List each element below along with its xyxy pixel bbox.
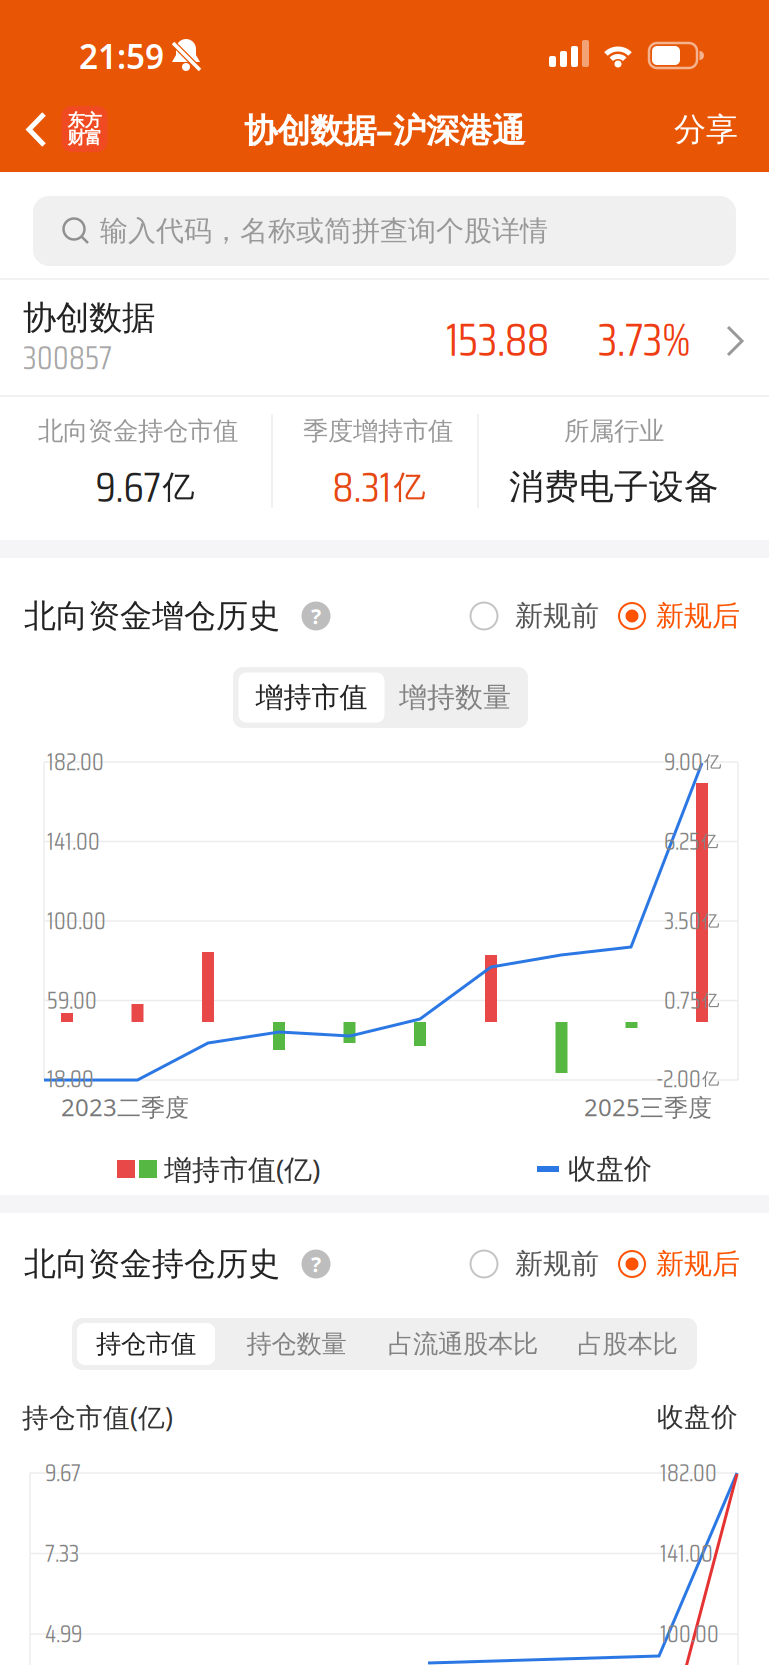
staticText: 141.00 [660, 1535, 713, 1572]
button[interactable]: 增持数量 [399, 672, 511, 722]
staticText: 300857 [23, 333, 112, 383]
staticText: 182.00 [47, 743, 104, 781]
staticText: 182.00 [660, 1454, 717, 1492]
staticText: 收盘价 [657, 1401, 738, 1433]
staticText: 亿 [702, 1068, 719, 1090]
staticText: 59.00 [47, 982, 97, 1019]
staticText: 新规后 [656, 599, 740, 633]
staticText: 增持市值 [255, 680, 367, 715]
staticText: 协创数据 [23, 297, 155, 338]
staticText: 持仓市值 [96, 1328, 196, 1359]
staticText: 新规前 [515, 599, 599, 633]
staticText: 亿 [702, 910, 719, 932]
staticText: 9.00 [664, 743, 703, 781]
staticText: 北向资金持仓历史 [24, 1244, 280, 1284]
staticText: 3.50 [664, 902, 701, 940]
staticText: 亿 [162, 467, 194, 507]
staticText: 增持数量 [399, 680, 511, 715]
staticText: 持仓数量 [246, 1328, 346, 1359]
button[interactable]: 东方财富 [61, 106, 107, 152]
staticText: 分享 [674, 110, 738, 149]
staticText: 4.99 [45, 1615, 82, 1653]
button[interactable]: 协创数据 [0, 280, 769, 396]
staticText: 6.25 [664, 823, 700, 860]
button[interactable]: 分享 [662, 101, 750, 157]
staticText: 占股本比 [577, 1328, 677, 1359]
staticText: 2025三季度 [584, 1091, 712, 1123]
button[interactable]: 持仓市值 [77, 1323, 215, 1365]
staticText: 所属行业 [564, 415, 664, 446]
staticText: 协创数据–沪深港通 [244, 107, 525, 152]
staticText: 21:59 [79, 34, 164, 78]
staticText: 新规前 [515, 1247, 599, 1281]
staticText: 153.88 [446, 304, 549, 376]
staticText: ? [311, 1250, 321, 1278]
staticText: 占流通股本比 [388, 1328, 538, 1359]
staticText: 2023二季度 [61, 1091, 189, 1123]
staticText: 9.67 [95, 453, 160, 521]
staticText: 北向资金增仓历史 [24, 596, 280, 636]
button[interactable]: 帮助 [301, 1249, 330, 1278]
staticText: 输入代码，名称或简拼查询个股详情 [100, 214, 548, 248]
staticText: 亿 [701, 831, 718, 852]
staticText: 100.00 [47, 902, 106, 940]
staticText: 7.33 [45, 1535, 79, 1572]
staticText: 亿 [393, 467, 425, 507]
staticText: 季度增持市值 [303, 415, 453, 446]
staticText: 3.73% [598, 304, 691, 376]
staticText: 消费电子设备 [509, 466, 719, 508]
staticText: ? [311, 602, 321, 630]
button[interactable]: 新规前 [468, 1242, 598, 1286]
button[interactable]: 搜索 [33, 196, 736, 266]
staticText: 收盘价 [568, 1152, 652, 1186]
button[interactable]: 帮助 [301, 601, 330, 630]
staticText: 0.75 [664, 982, 701, 1019]
button[interactable]: 新规后 [618, 1242, 742, 1286]
staticText: 18.00 [47, 1060, 94, 1098]
button[interactable]: 新规后 [618, 594, 742, 638]
staticText: 北向资金持仓市值 [38, 415, 238, 446]
button[interactable]: 占流通股本比 [388, 1323, 538, 1365]
staticText: 100.00 [660, 1615, 719, 1653]
staticText: 持仓市值(亿) [22, 1399, 173, 1435]
staticText: 新规后 [656, 1247, 740, 1281]
staticText: 9.67 [45, 1454, 81, 1492]
button[interactable]: 占股本比 [577, 1323, 677, 1365]
button[interactable]: 新规前 [468, 594, 598, 638]
staticText: 141.00 [47, 823, 100, 860]
button[interactable]: 增持市值 [238, 672, 384, 722]
staticText: 财富 [67, 127, 101, 148]
staticText: 亿 [702, 990, 719, 1011]
button[interactable]: Back [0, 0, 769, 1665]
staticText: 亿 [704, 751, 721, 773]
staticText: 增持市值(亿) [164, 1150, 320, 1188]
button[interactable]: 持仓数量 [246, 1323, 346, 1365]
staticText: 8.31 [332, 453, 391, 521]
staticText: 东方 [67, 110, 101, 131]
staticText: -2.00 [656, 1060, 701, 1098]
